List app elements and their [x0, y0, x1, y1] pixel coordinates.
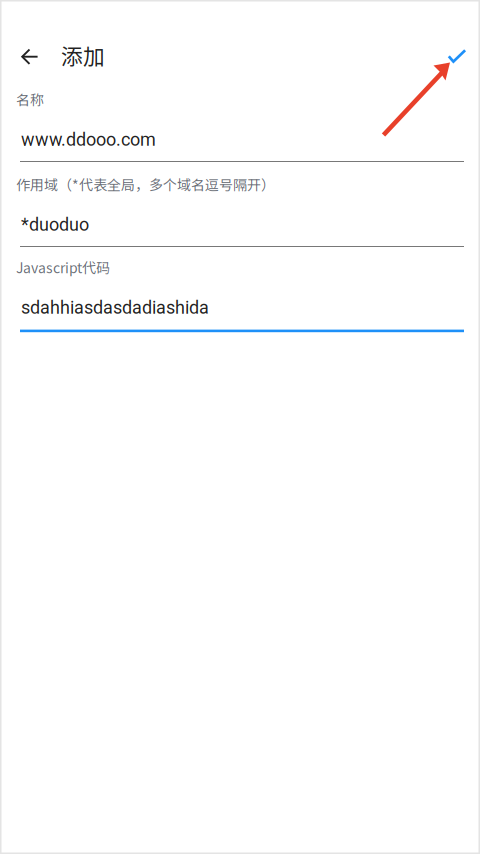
- staticText: sdahhiasdasdadiashida: [21, 297, 209, 318]
- staticText: 添加: [61, 39, 105, 71]
- staticText: Javascript代码: [16, 257, 110, 277]
- button[interactable]: Save: [434, 32, 480, 80]
- button[interactable]: Back: [6, 31, 54, 81]
- button[interactable]: 添加: [54, 32, 105, 80]
- staticText: *duoduo: [21, 214, 89, 235]
- staticText: www.ddooo.com: [21, 129, 156, 150]
- staticText: 名称: [16, 89, 44, 109]
- staticText: 作用域（*代表全局，多个域名逗号隔开）: [16, 174, 275, 194]
